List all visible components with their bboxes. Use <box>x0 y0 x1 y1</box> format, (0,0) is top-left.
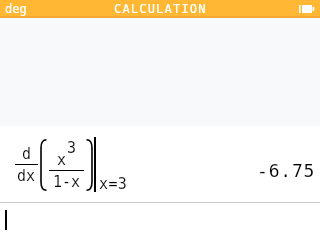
staticText: CALCULATION <box>114 2 207 16</box>
staticText: 1-x <box>53 173 81 190</box>
staticText: deg <box>5 2 27 16</box>
staticText: dx <box>17 167 36 184</box>
staticText: -6.75 <box>257 160 316 181</box>
staticText: d <box>22 145 32 162</box>
button[interactable] <box>0 203 320 240</box>
staticText: 3 <box>67 139 77 156</box>
button[interactable]: deg <box>0 0 320 18</box>
button[interactable]: d <box>0 126 320 202</box>
staticText: x <box>57 151 67 168</box>
staticText: x=3 <box>99 175 128 192</box>
